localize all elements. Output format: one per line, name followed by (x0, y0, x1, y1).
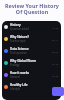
staticText: History (10, 23, 21, 27)
staticText: 05:12 (52, 86, 59, 89)
staticText: 08:02 (52, 50, 59, 53)
staticText: 07:45 (52, 62, 59, 65)
staticText: Why Global Warm (10, 59, 37, 63)
staticText: 09:11 (52, 38, 59, 41)
staticText: Question asked (10, 27, 29, 31)
button[interactable]: Why Global Warm (2, 57, 61, 69)
button[interactable]: Next (52, 87, 64, 96)
staticText: Data Science (10, 47, 29, 51)
staticText: Science topic (10, 39, 26, 43)
button[interactable]: Why Nature? (2, 33, 61, 45)
staticText: Review Your History Of Question (0, 2, 64, 16)
staticText: 10:20 (52, 26, 59, 29)
staticText: How it works (10, 71, 30, 75)
button[interactable]: Data Science (2, 45, 61, 57)
button[interactable]: How it works (2, 69, 61, 81)
staticText: Lifestyle (10, 87, 21, 91)
staticText: General (10, 75, 20, 79)
staticText: 06:30 (52, 74, 59, 77)
staticText: Why Nature? (10, 35, 29, 39)
staticText: Healthy Life (10, 83, 28, 87)
button[interactable]: History (2, 21, 61, 33)
staticText: Tech question (10, 51, 27, 55)
staticText: Ecology (10, 63, 20, 67)
button[interactable]: Healthy Life (2, 81, 61, 93)
